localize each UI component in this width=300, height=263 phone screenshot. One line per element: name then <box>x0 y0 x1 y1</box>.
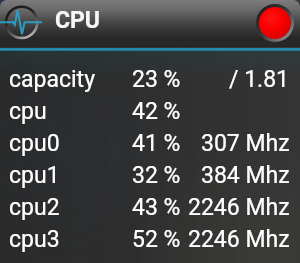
button[interactable]: cpu <box>0 95 300 127</box>
staticText: cpu <box>9 98 47 125</box>
button[interactable]: cpu3 <box>0 223 300 255</box>
staticText: 43 % <box>132 194 181 221</box>
button[interactable]: cpu2 <box>0 191 300 223</box>
staticText: cpu0 <box>9 130 60 157</box>
staticText: 32 % <box>132 162 181 189</box>
button[interactable]: cpu1 <box>0 159 300 191</box>
staticText: CPU <box>55 7 101 34</box>
button[interactable]: Stop <box>256 4 294 42</box>
staticText: 2246 Mhz <box>188 194 290 221</box>
staticText: 41 % <box>132 130 181 157</box>
staticText: 52 % <box>132 226 181 253</box>
staticText: 384 Mhz <box>201 162 290 189</box>
staticText: cpu3 <box>9 226 60 253</box>
staticText: / 1.81 <box>229 66 290 93</box>
staticText: cpu2 <box>9 194 60 221</box>
staticText: capacity <box>9 66 96 93</box>
button[interactable]: CPU monitor <box>0 0 45 45</box>
staticText: 307 Mhz <box>201 130 290 157</box>
staticText: cpu1 <box>9 162 60 189</box>
staticText: 2246 Mhz <box>188 226 290 253</box>
button[interactable]: cpu0 <box>0 127 300 159</box>
staticText: 23 % <box>132 66 181 93</box>
staticText: 42 % <box>132 98 181 125</box>
button[interactable]: capacity <box>0 63 300 95</box>
